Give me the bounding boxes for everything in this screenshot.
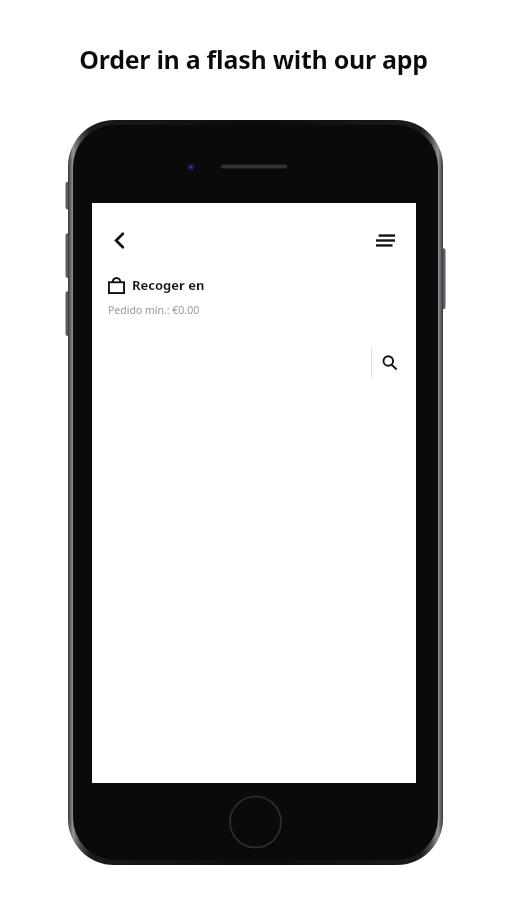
staticText: Pedido mín.: €0.00: [108, 303, 200, 317]
button[interactable]: Search: [372, 345, 406, 379]
button[interactable]: Back: [98, 219, 140, 261]
button[interactable]: Recoger en: [108, 273, 205, 297]
button[interactable]: Menu: [364, 219, 406, 261]
staticText: Order in a flash with our app: [79, 42, 428, 76]
staticText: Recoger en: [132, 276, 205, 294]
